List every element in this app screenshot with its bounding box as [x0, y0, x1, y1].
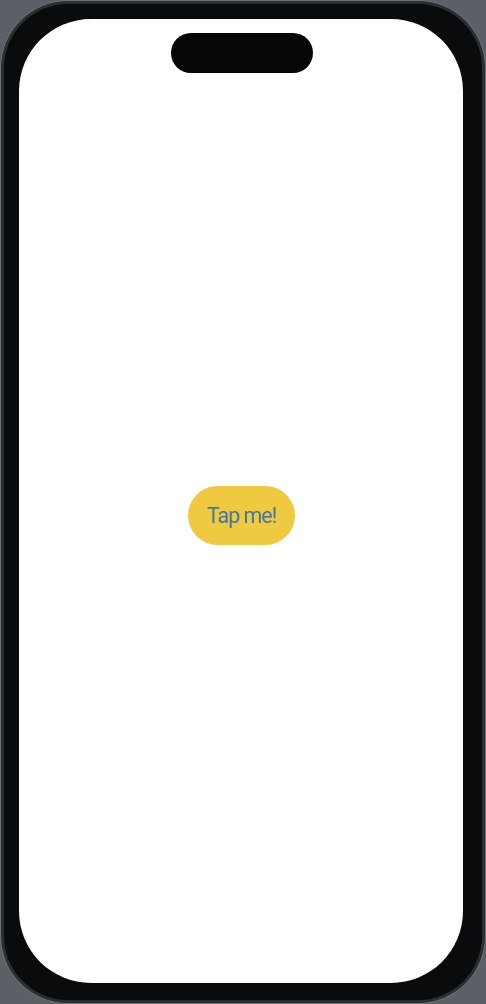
staticText: Tap me! — [207, 503, 277, 528]
button[interactable]: Tap me! — [188, 486, 295, 545]
